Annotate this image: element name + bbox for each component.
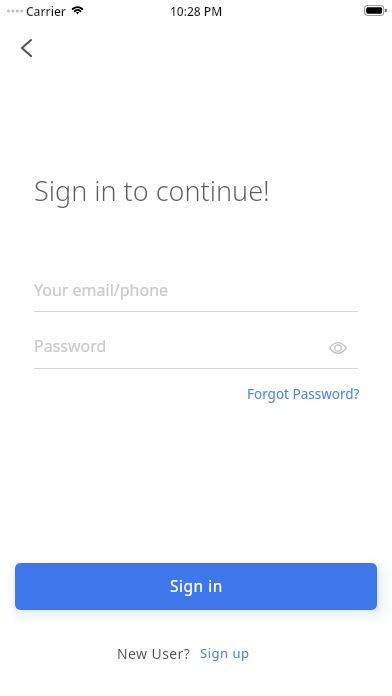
button[interactable]: Back bbox=[6, 28, 46, 68]
staticText: Sign in to continue! bbox=[34, 172, 270, 209]
staticText: Your email/phone bbox=[34, 279, 169, 301]
button[interactable]: Password bbox=[34, 330, 358, 369]
button[interactable]: Forgot Password? bbox=[239, 378, 368, 410]
staticText: Forgot Password? bbox=[247, 385, 360, 403]
staticText: Carrier bbox=[26, 3, 66, 19]
staticText: New User? bbox=[117, 644, 191, 663]
staticText: 10:28 PM bbox=[170, 3, 223, 19]
button[interactable]: Sign up bbox=[191, 638, 259, 668]
staticText: Sign up bbox=[200, 644, 250, 662]
button[interactable]: Sign in bbox=[15, 563, 377, 610]
button[interactable]: Your email/phone bbox=[34, 274, 358, 312]
staticText: Password bbox=[34, 335, 107, 357]
staticText: Sign in bbox=[170, 575, 223, 596]
button[interactable]: Show password bbox=[325, 335, 351, 361]
